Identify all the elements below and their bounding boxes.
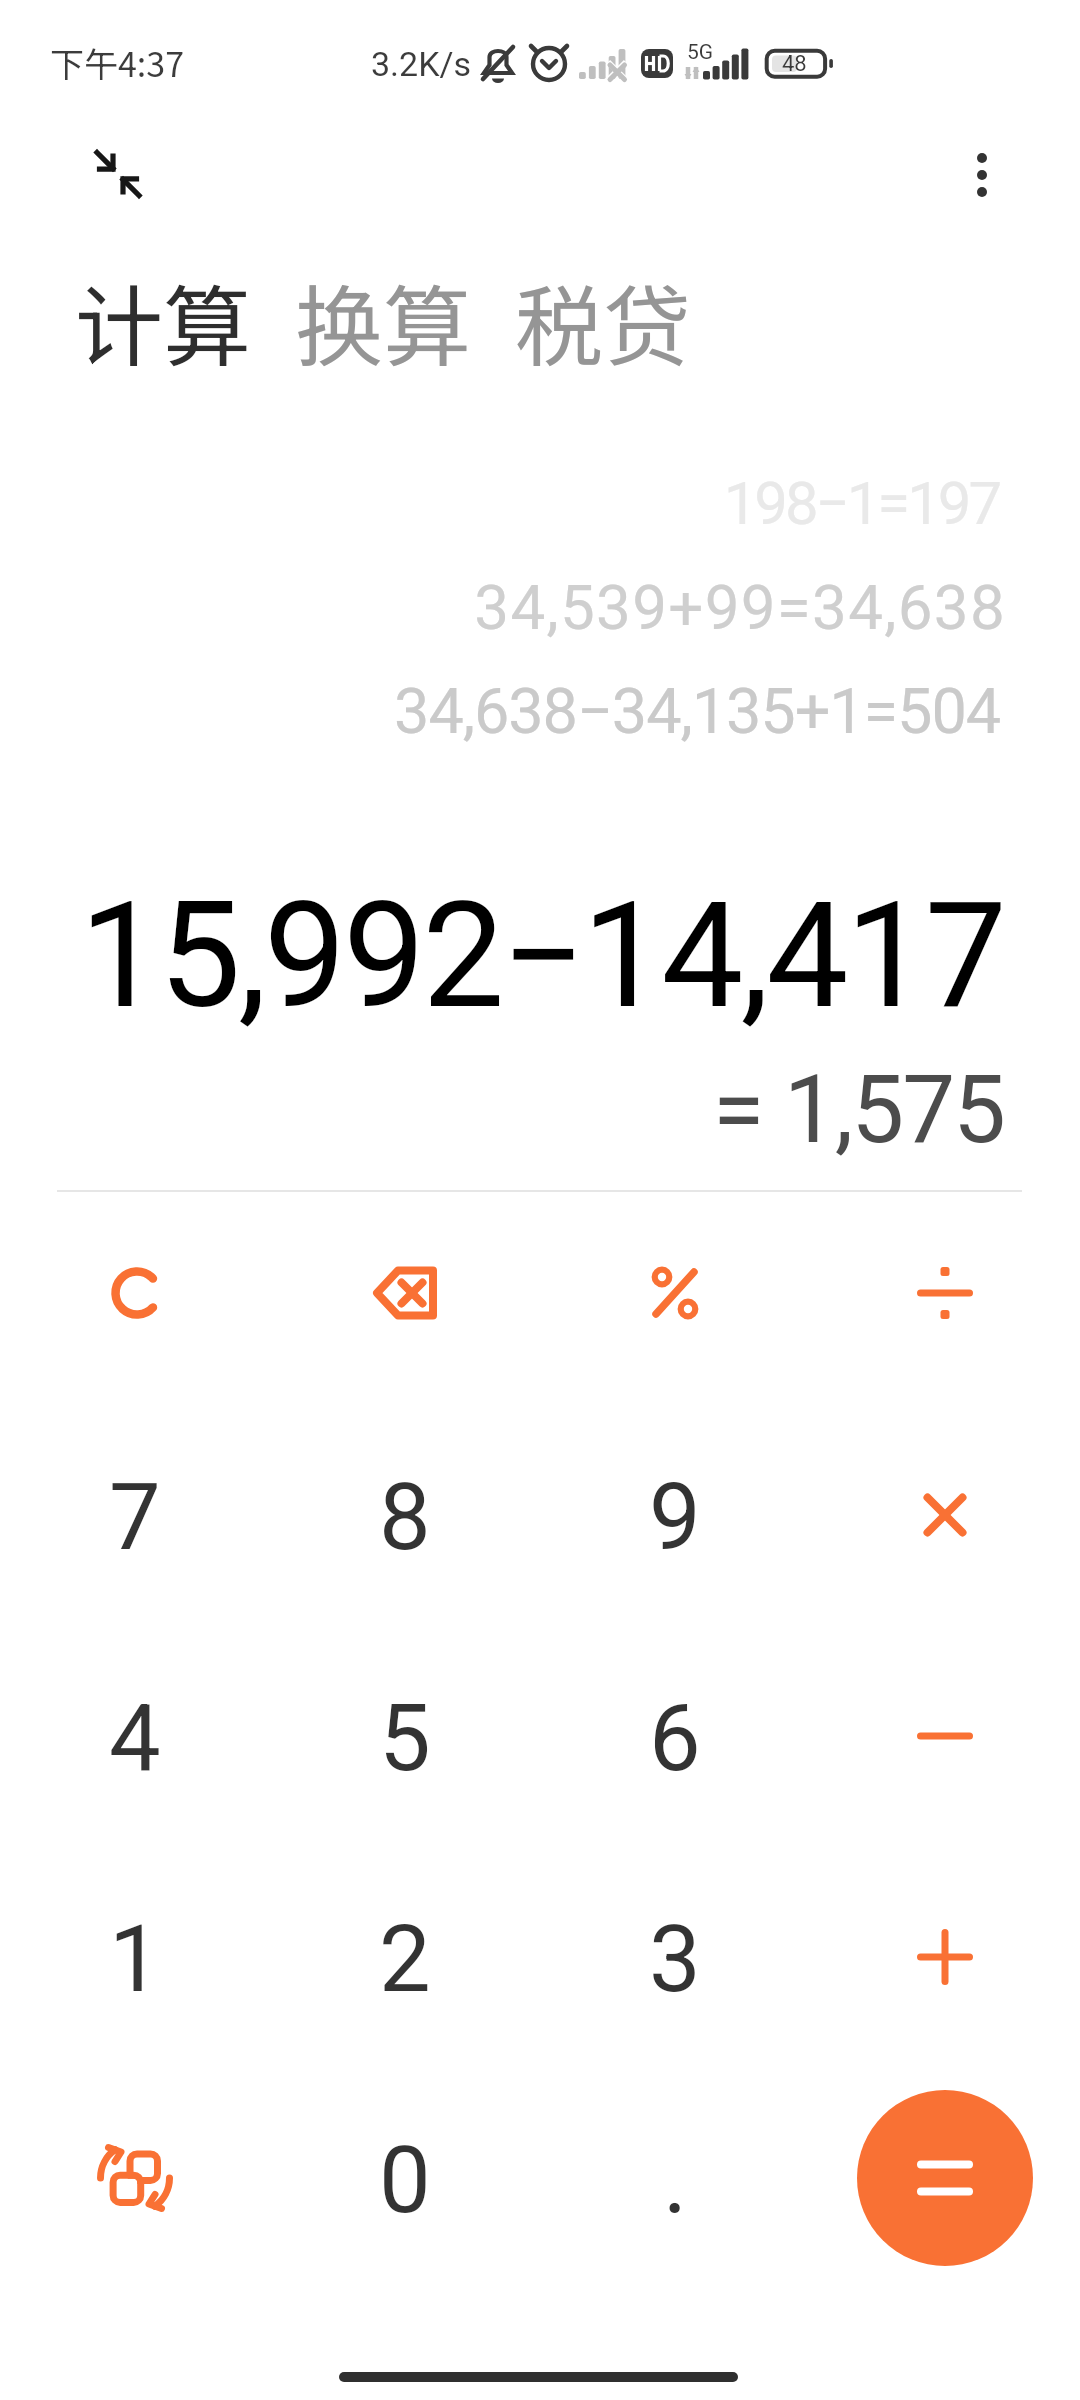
staticText: 198−1=197 — [723, 469, 999, 539]
button[interactable]: 计算 — [65, 239, 262, 402]
staticText: 换算 — [295, 257, 472, 384]
staticText: 1 — [109, 1906, 161, 2014]
staticText: 48 — [782, 51, 807, 77]
button[interactable]: . — [540, 2068, 810, 2288]
button[interactable]: 8 — [270, 1405, 540, 1625]
staticText: 税贷 — [515, 257, 692, 384]
staticText: 6 — [649, 1685, 701, 1793]
staticText: 3 — [649, 1906, 701, 2014]
button[interactable]: Collapse — [76, 132, 160, 216]
staticText: 2 — [379, 1906, 431, 2014]
button[interactable]: Convert — [0, 2068, 270, 2288]
button[interactable]: 7 — [0, 1405, 270, 1625]
staticText: 计算 — [75, 257, 252, 384]
button[interactable]: Minus — [810, 1626, 1080, 1846]
button[interactable]: 3 — [540, 1847, 810, 2067]
button[interactable]: Percent — [540, 1183, 810, 1403]
button[interactable]: 换算 — [285, 239, 482, 402]
staticText: 7 — [109, 1464, 161, 1572]
button[interactable]: 0 — [270, 2068, 540, 2288]
button[interactable]: More options — [940, 133, 1024, 217]
button[interactable]: Multiply — [810, 1405, 1080, 1625]
button[interactable]: 2 — [270, 1847, 540, 2067]
staticText: . — [663, 2127, 688, 2235]
staticText: 34,638−34,135+1=504 — [394, 675, 1000, 749]
button[interactable]: 9 — [540, 1405, 810, 1625]
staticText: 下午4:37 — [50, 38, 185, 87]
staticText: 0 — [379, 2127, 431, 2235]
staticText: 9 — [649, 1464, 701, 1572]
button[interactable]: Divide — [810, 1183, 1080, 1403]
staticText: 4 — [109, 1685, 161, 1793]
staticText: 5 — [379, 1685, 431, 1793]
staticText: 34,539+99=34,638 — [474, 572, 1006, 645]
staticText: 15,992−14,417 — [79, 870, 1004, 1041]
button[interactable]: 5 — [270, 1626, 540, 1846]
button[interactable]: Plus — [810, 1847, 1080, 2067]
staticText: = 1,575 — [712, 1055, 1004, 1165]
staticText: 8 — [379, 1464, 431, 1572]
button[interactable]: 6 — [540, 1626, 810, 1846]
staticText: 3.2K/s — [371, 44, 472, 84]
button[interactable]: 1 — [0, 1847, 270, 2067]
staticText: 5G — [687, 40, 714, 65]
button[interactable]: 4 — [0, 1626, 270, 1846]
button[interactable]: Backspace — [270, 1183, 540, 1403]
button[interactable]: Clear — [0, 1183, 270, 1403]
button[interactable]: 税贷 — [505, 239, 702, 402]
button[interactable]: Equals — [857, 2090, 1033, 2266]
